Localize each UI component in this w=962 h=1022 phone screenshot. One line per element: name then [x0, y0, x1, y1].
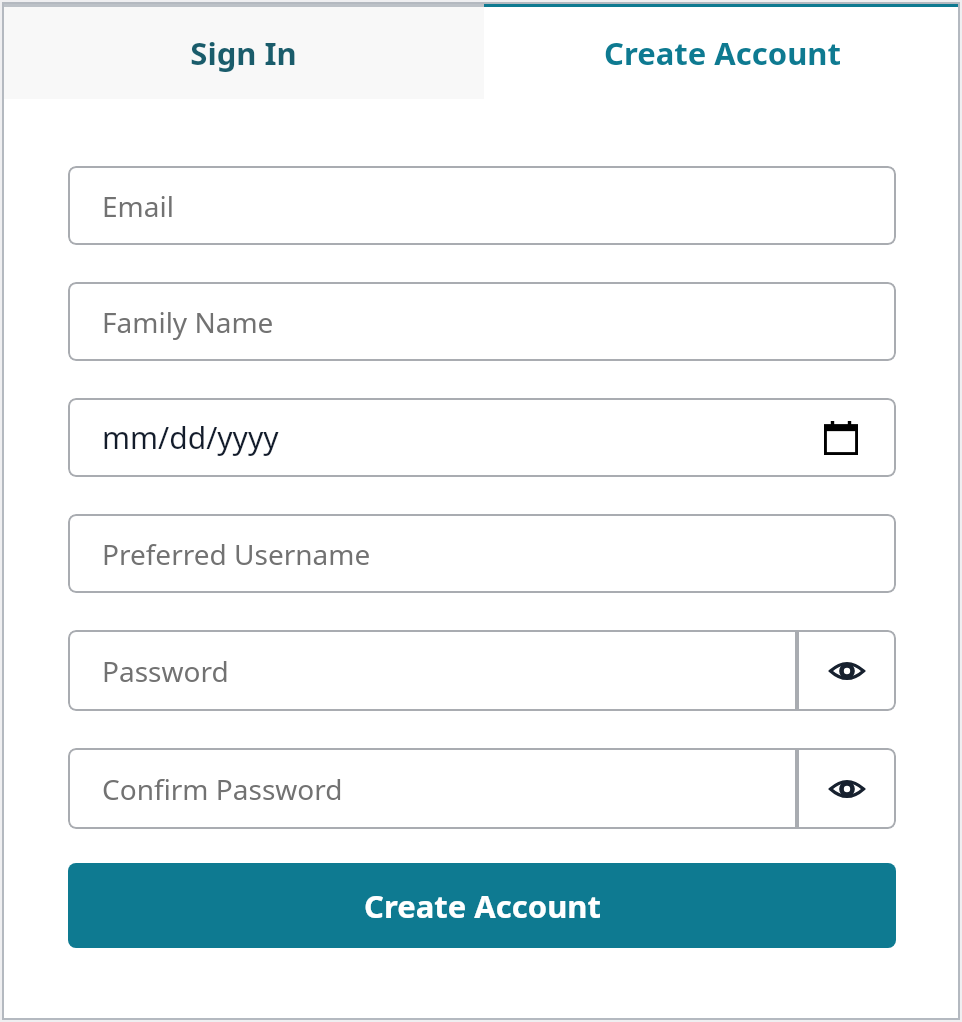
staticText: Email [102, 187, 174, 225]
staticText: Password [102, 652, 229, 690]
button[interactable]: Password [68, 630, 797, 711]
button[interactable]: Create Account [68, 863, 896, 948]
staticText: Family Name [102, 303, 274, 341]
staticText: Confirm Password [102, 770, 343, 808]
button[interactable]: Email [68, 166, 896, 245]
button[interactable]: Create Account [484, 2, 960, 99]
button[interactable]: Preferred Username [68, 514, 896, 593]
button[interactable]: Open calendar [824, 421, 858, 455]
button[interactable]: mm/dd/yyyy [68, 398, 896, 477]
staticText: Create Account [604, 32, 841, 74]
button[interactable]: Sign In [2, 2, 484, 99]
button[interactable]: Show Password [797, 630, 896, 711]
staticText: Preferred Username [102, 535, 371, 573]
staticText: mm/dd/yyyy [102, 417, 279, 458]
button[interactable]: Show Confirm Password [797, 748, 896, 829]
button[interactable]: Confirm Password [68, 748, 797, 829]
staticText: Sign In [190, 32, 297, 74]
button[interactable]: Family Name [68, 282, 896, 361]
staticText: Create Account [364, 885, 601, 927]
